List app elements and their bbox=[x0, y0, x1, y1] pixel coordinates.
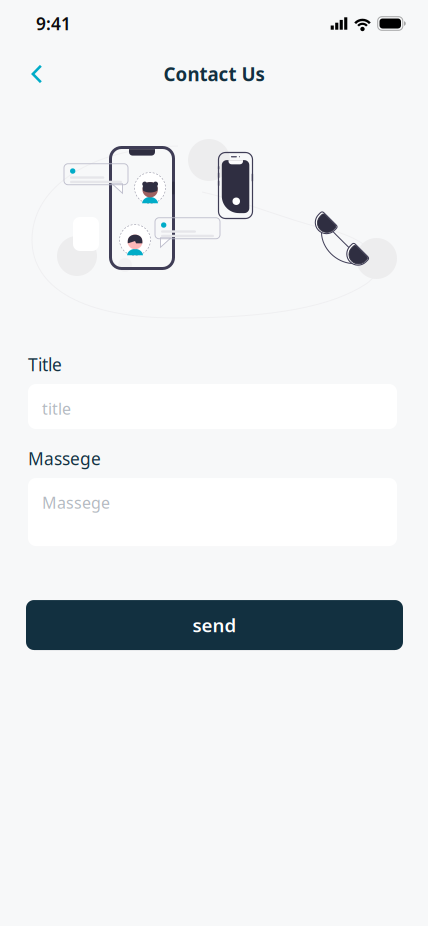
button[interactable]: title bbox=[28, 384, 397, 429]
button[interactable]: Massege bbox=[28, 478, 397, 546]
staticText: Title bbox=[28, 353, 62, 376]
staticText: Massege bbox=[28, 447, 101, 470]
staticText: title bbox=[42, 398, 71, 419]
staticText: 9:41 bbox=[36, 12, 71, 35]
staticText: Massege bbox=[42, 492, 110, 513]
button[interactable]: send bbox=[26, 600, 403, 650]
button[interactable]: Back bbox=[15, 52, 59, 96]
staticText: send bbox=[192, 613, 236, 637]
staticText: Contact Us bbox=[163, 62, 264, 86]
